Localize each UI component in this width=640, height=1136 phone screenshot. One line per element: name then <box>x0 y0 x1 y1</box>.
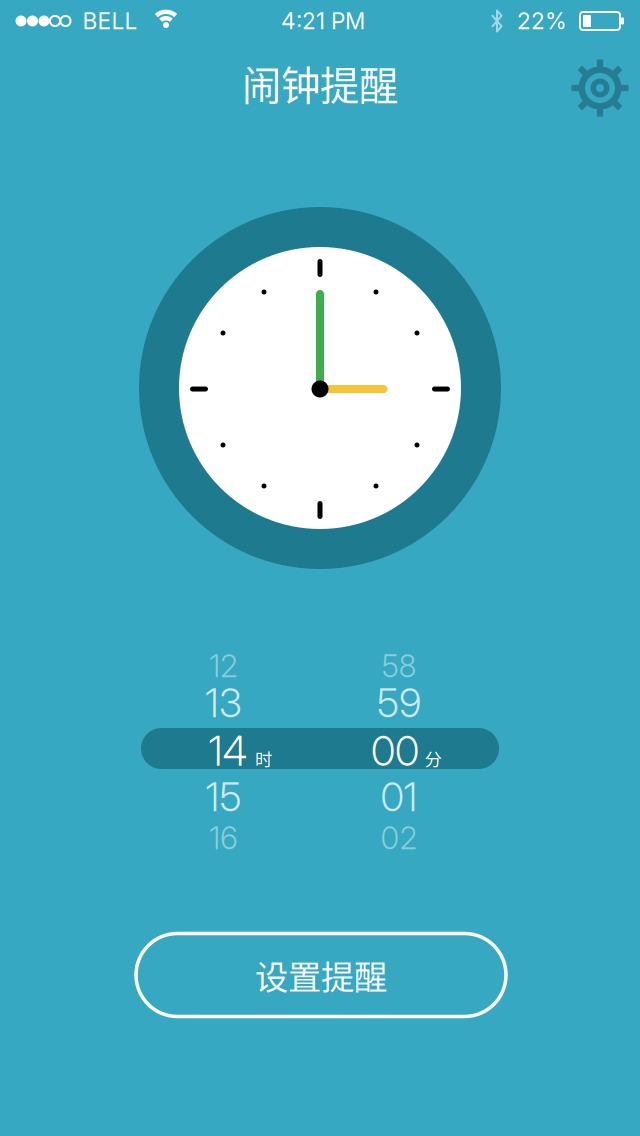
staticText: BELL <box>82 7 137 35</box>
staticText: 13 <box>205 679 242 727</box>
staticText: 02 <box>380 819 417 856</box>
staticText: 16 <box>209 819 238 856</box>
staticText: 58 <box>381 647 416 684</box>
staticText: 12 <box>209 647 238 684</box>
staticText: 01 <box>380 773 417 821</box>
staticText: 设置提醒 <box>255 951 387 999</box>
staticText: 14 <box>208 726 247 776</box>
staticText: 时 <box>255 746 272 771</box>
staticText: 15 <box>205 773 241 821</box>
staticText: 分 <box>424 746 441 771</box>
button[interactable]: 设置提醒 <box>136 933 506 1016</box>
button[interactable]: Settings <box>571 59 629 117</box>
staticText: 00 <box>371 726 419 776</box>
staticText: 闹钟提醒 <box>242 54 398 111</box>
staticText: 4:21 PM <box>281 7 365 35</box>
staticText: 22% <box>517 7 567 35</box>
staticText: 59 <box>377 679 421 727</box>
